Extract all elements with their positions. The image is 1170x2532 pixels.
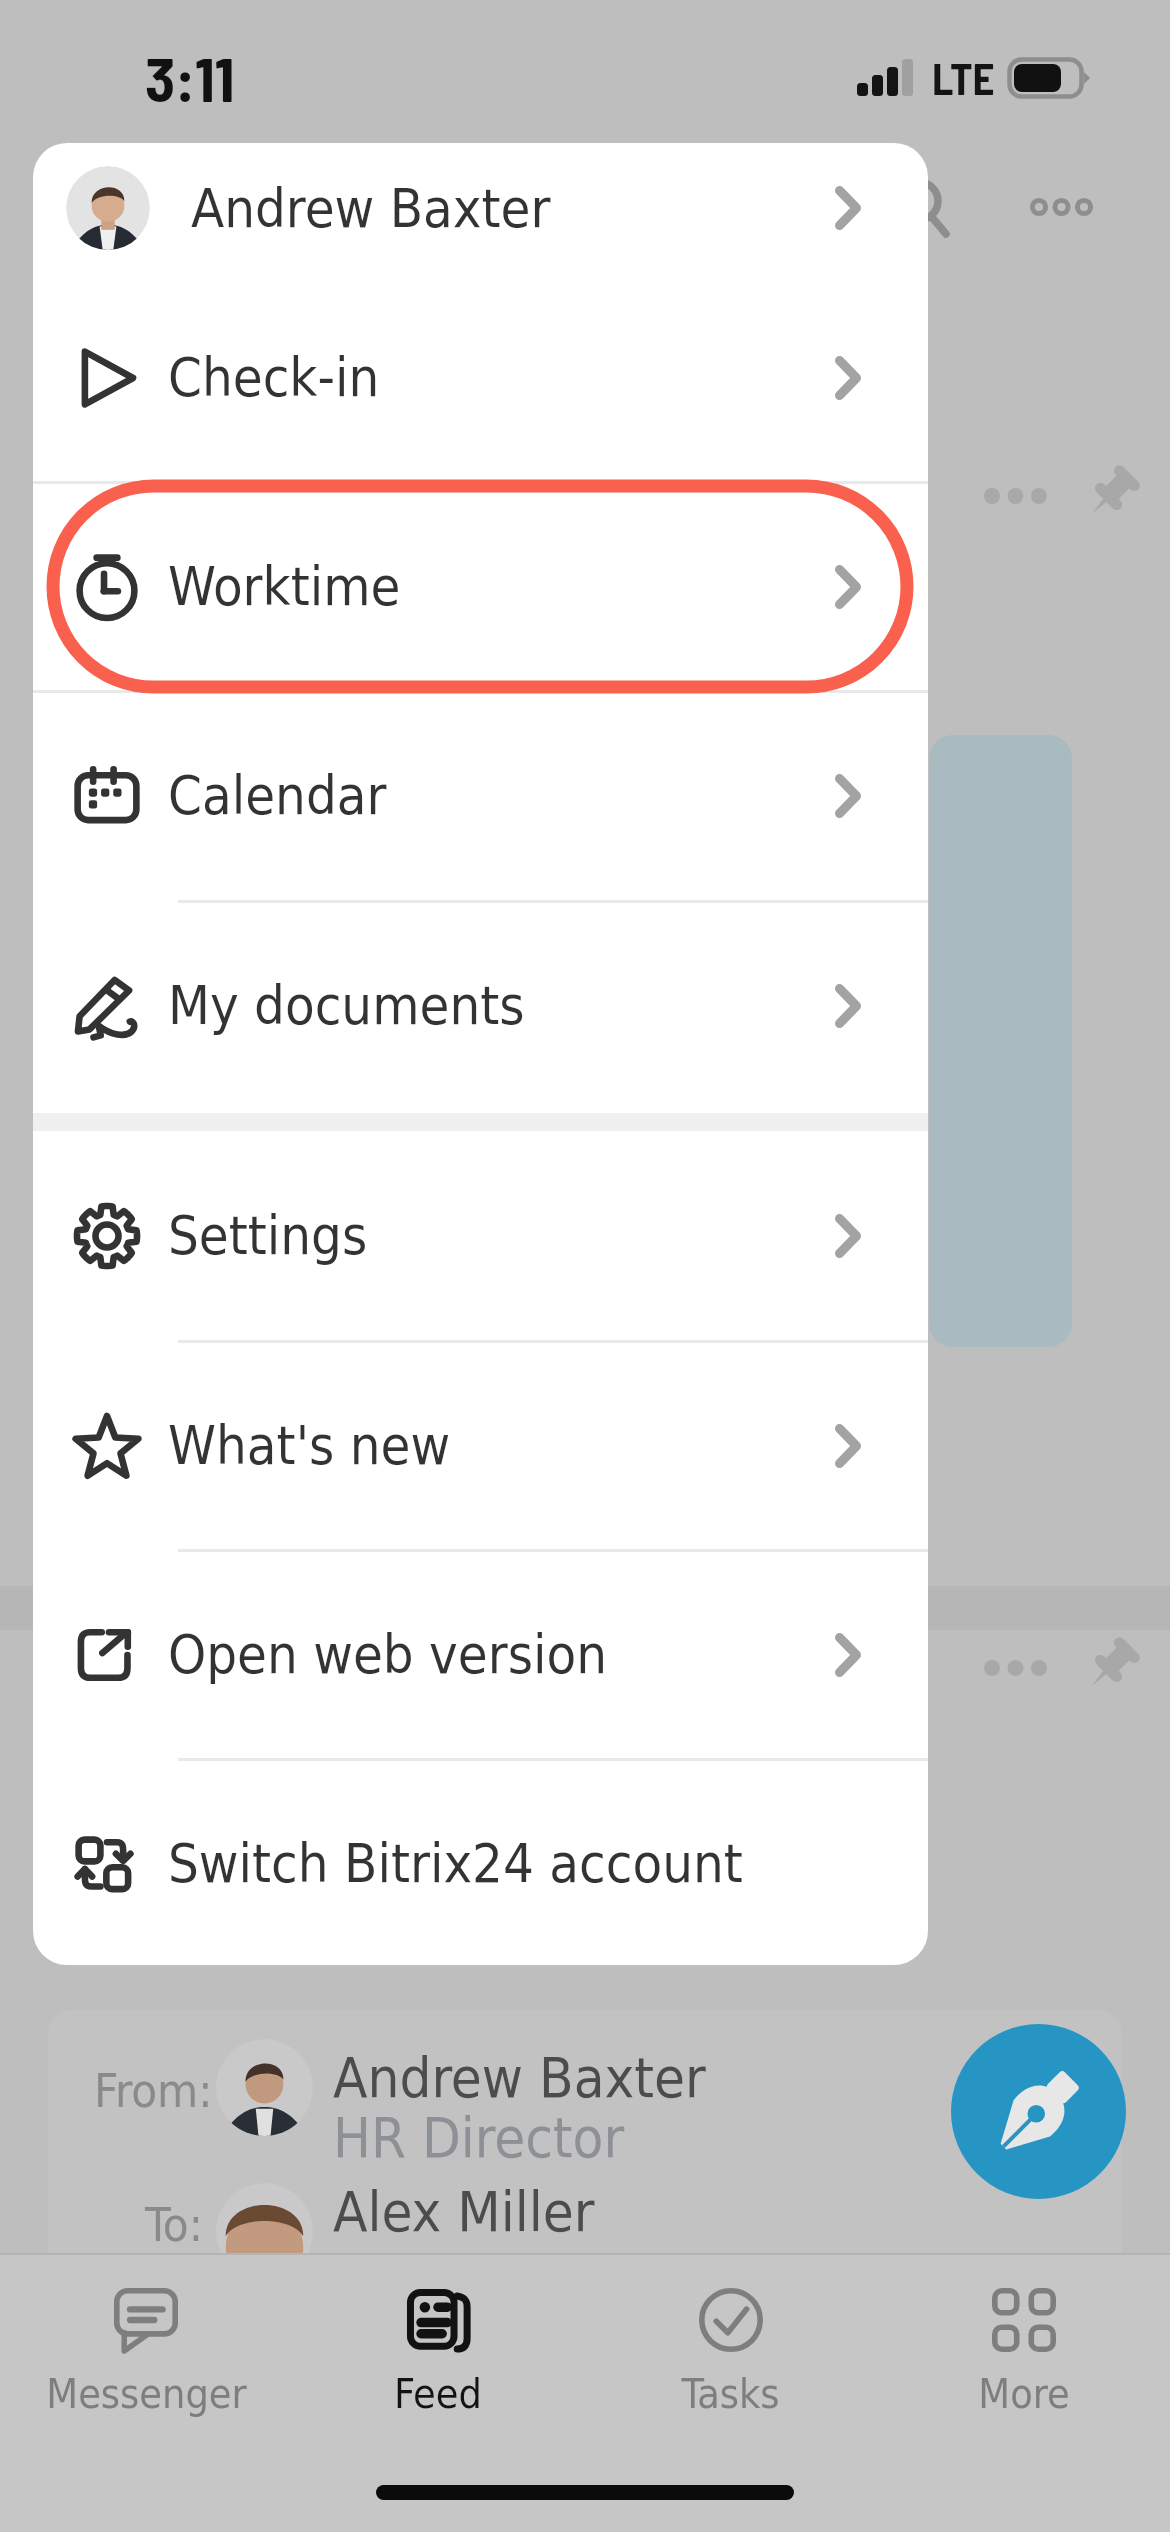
button[interactable]: Open web version (33, 1550, 928, 1759)
button[interactable]: Feed (292, 2253, 584, 2443)
button[interactable]: Andrew Baxter (33, 143, 928, 273)
button[interactable]: Check-in (33, 273, 928, 482)
staticText: From: (94, 2063, 213, 2118)
button[interactable]: More (877, 2253, 1170, 2443)
button[interactable]: Tasks (584, 2253, 877, 2443)
staticText: Settings (168, 1204, 368, 1267)
staticText: Messenger (46, 2370, 247, 2418)
staticText: My documents (168, 974, 525, 1037)
button[interactable]: Calendar (33, 691, 928, 900)
staticText: Tasks (681, 2370, 780, 2418)
staticText: Feed (394, 2370, 482, 2418)
button[interactable]: My documents (33, 901, 928, 1110)
button[interactable]: Settings (33, 1131, 928, 1340)
staticText: HR Director (333, 2105, 625, 2170)
button[interactable]: Worktime (33, 482, 928, 691)
button[interactable]: Switch Bitrix24 account (33, 1759, 928, 1965)
staticText: Switch Bitrix24 account (168, 1832, 743, 1895)
button[interactable]: Create post (951, 2024, 1126, 2199)
staticText: More (978, 2370, 1070, 2418)
staticText: LTE (932, 52, 995, 104)
button[interactable]: Messenger (0, 2253, 292, 2443)
staticText: 3:11 (145, 40, 235, 114)
staticText: Calendar (168, 764, 387, 827)
staticText: Open web version (168, 1623, 608, 1686)
staticText: Andrew Baxter (333, 2045, 706, 2110)
staticText: Alex Miller (333, 2179, 595, 2244)
button[interactable]: What's new (33, 1341, 928, 1550)
button[interactable]: From: (48, 2010, 1122, 2254)
staticText: To: (145, 2197, 203, 2252)
staticText: What's new (168, 1414, 451, 1477)
staticText: Andrew Baxter (191, 177, 551, 240)
staticText: Worktime (168, 555, 401, 618)
staticText: Check-in (168, 346, 380, 409)
